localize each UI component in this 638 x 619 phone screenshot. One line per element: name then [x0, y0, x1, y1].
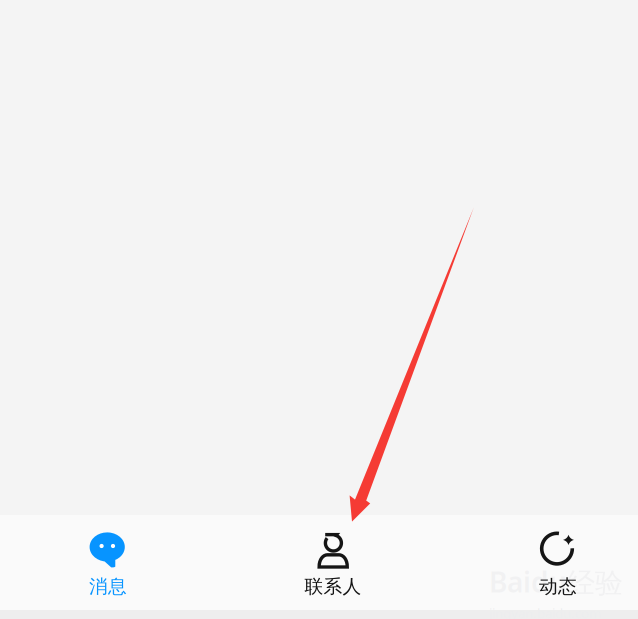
button[interactable]: 联系人	[273, 515, 393, 610]
staticText: 动态	[539, 575, 577, 598]
staticText: Baidu经验	[489, 563, 623, 600]
staticText: 联系人	[304, 575, 361, 598]
staticText: 消息	[89, 575, 127, 598]
button[interactable]: 消息	[48, 515, 168, 610]
staticText: jingyan.baidu.com	[489, 604, 601, 619]
button[interactable]: 动态	[498, 515, 618, 610]
